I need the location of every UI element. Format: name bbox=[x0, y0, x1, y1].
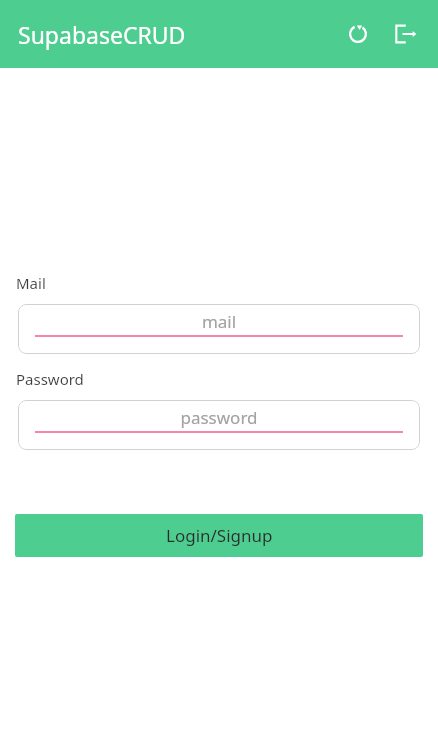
staticText: SupabaseCRUD bbox=[18, 19, 186, 50]
button[interactable]: password bbox=[18, 400, 420, 450]
button[interactable]: Login/Signup bbox=[15, 514, 423, 557]
button[interactable]: Refresh bbox=[334, 10, 382, 58]
button[interactable]: mail bbox=[18, 304, 420, 354]
staticText: Login/Signup bbox=[166, 524, 273, 547]
staticText: Mail bbox=[16, 273, 46, 293]
staticText: Password bbox=[16, 369, 84, 389]
button[interactable]: Logout bbox=[382, 10, 430, 58]
staticText: mail bbox=[18, 310, 420, 333]
staticText: password bbox=[18, 406, 420, 429]
